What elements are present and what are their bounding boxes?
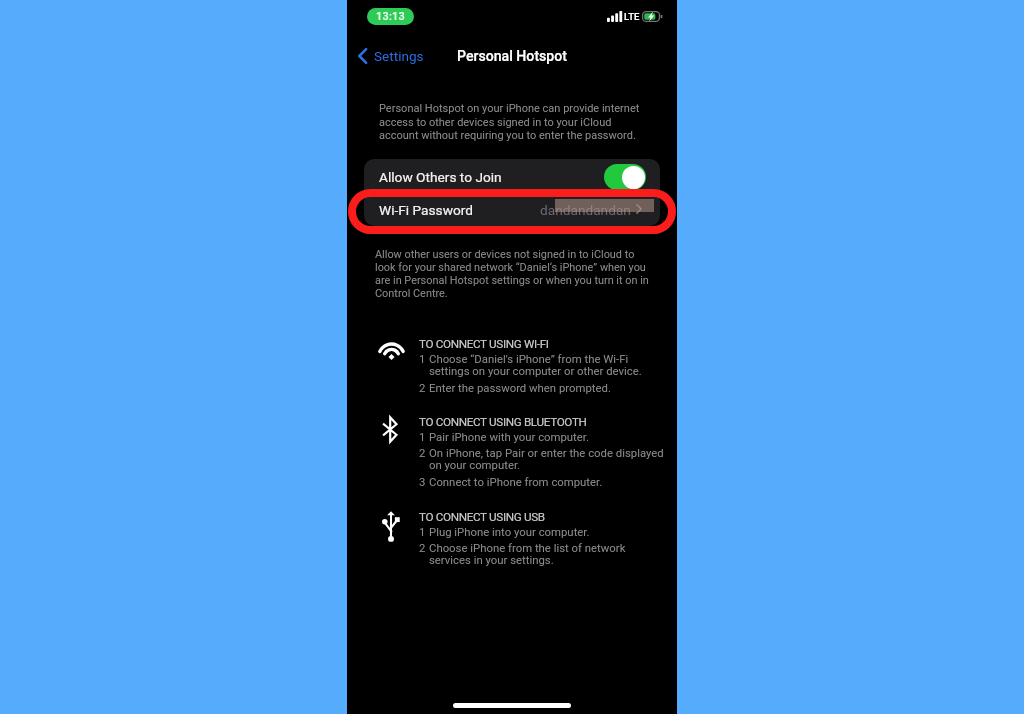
- staticText: 2: [419, 381, 429, 394]
- staticText: Plug iPhone into your computer.: [429, 525, 590, 538]
- staticText: Allow other users or devices not signed …: [375, 248, 649, 300]
- staticText: Wi-Fi Password: [379, 202, 474, 218]
- staticText: TO CONNECT USING BLUETOOTH: [419, 415, 587, 429]
- staticText: Enter the password when prompted.: [429, 381, 611, 394]
- staticText: 3: [419, 475, 429, 488]
- staticText: 1: [419, 525, 429, 538]
- staticText: Pair iPhone with your computer.: [429, 430, 589, 443]
- staticText: dandandandan: [540, 202, 631, 218]
- staticText: TO CONNECT USING WI-FI: [419, 337, 549, 351]
- staticText: Connect to iPhone from computer.: [429, 475, 603, 488]
- staticText: Allow Others to Join: [379, 169, 502, 185]
- button[interactable]: Wi-Fi Password: [364, 193, 660, 226]
- staticText: 2: [419, 446, 429, 459]
- button[interactable]: Allow Others to Join: [364, 159, 660, 192]
- staticText: 1: [419, 430, 429, 443]
- staticText: Choose iPhone from the list of network s…: [429, 541, 626, 567]
- staticText: 13:13: [376, 10, 405, 23]
- staticText: 2: [419, 541, 429, 554]
- staticText: 1: [419, 352, 429, 365]
- staticText: Personal Hotspot: [457, 48, 567, 65]
- staticText: On iPhone, tap Pair or enter the code di…: [429, 446, 664, 472]
- staticText: TO CONNECT USING USB: [419, 510, 545, 524]
- staticText: Choose “Daniel's iPhone” from the Wi-Fi …: [429, 352, 642, 378]
- staticText: Personal Hotspot on your iPhone can prov…: [379, 102, 640, 141]
- staticText: Settings: [374, 48, 424, 64]
- staticText: LTE: [624, 11, 640, 22]
- button[interactable]: Allow Others to Join toggle: [604, 164, 646, 190]
- button[interactable]: Settings: [354, 43, 428, 69]
